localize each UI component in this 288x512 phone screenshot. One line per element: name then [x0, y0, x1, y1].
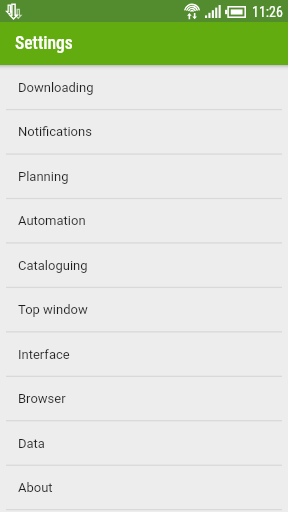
staticText: Top window — [18, 302, 88, 317]
other: Downloads — [5, 4, 22, 19]
button[interactable]: Automation — [0, 198, 288, 242]
staticText: Interface — [18, 347, 70, 362]
button[interactable]: About — [0, 465, 288, 509]
button[interactable]: Browser — [0, 376, 288, 420]
button[interactable]: Interface — [0, 332, 288, 376]
button[interactable]: Downloading — [0, 65, 288, 109]
button[interactable]: Notifications — [0, 109, 288, 153]
staticText: Settings — [15, 33, 73, 54]
staticText: Notifications — [18, 124, 92, 139]
staticText: 11:26 — [252, 4, 283, 20]
staticText: Downloading — [18, 80, 94, 95]
button[interactable]: Planning — [0, 154, 288, 198]
staticText: Automation — [18, 213, 86, 228]
staticText: Data — [18, 436, 45, 451]
button[interactable]: Data — [0, 421, 288, 465]
button[interactable]: Top window — [0, 287, 288, 331]
staticText: About — [18, 480, 53, 495]
button[interactable]: Cataloguing — [0, 243, 288, 287]
staticText: Planning — [18, 169, 69, 184]
staticText: Cataloguing — [18, 258, 88, 273]
staticText: Browser — [18, 391, 66, 406]
